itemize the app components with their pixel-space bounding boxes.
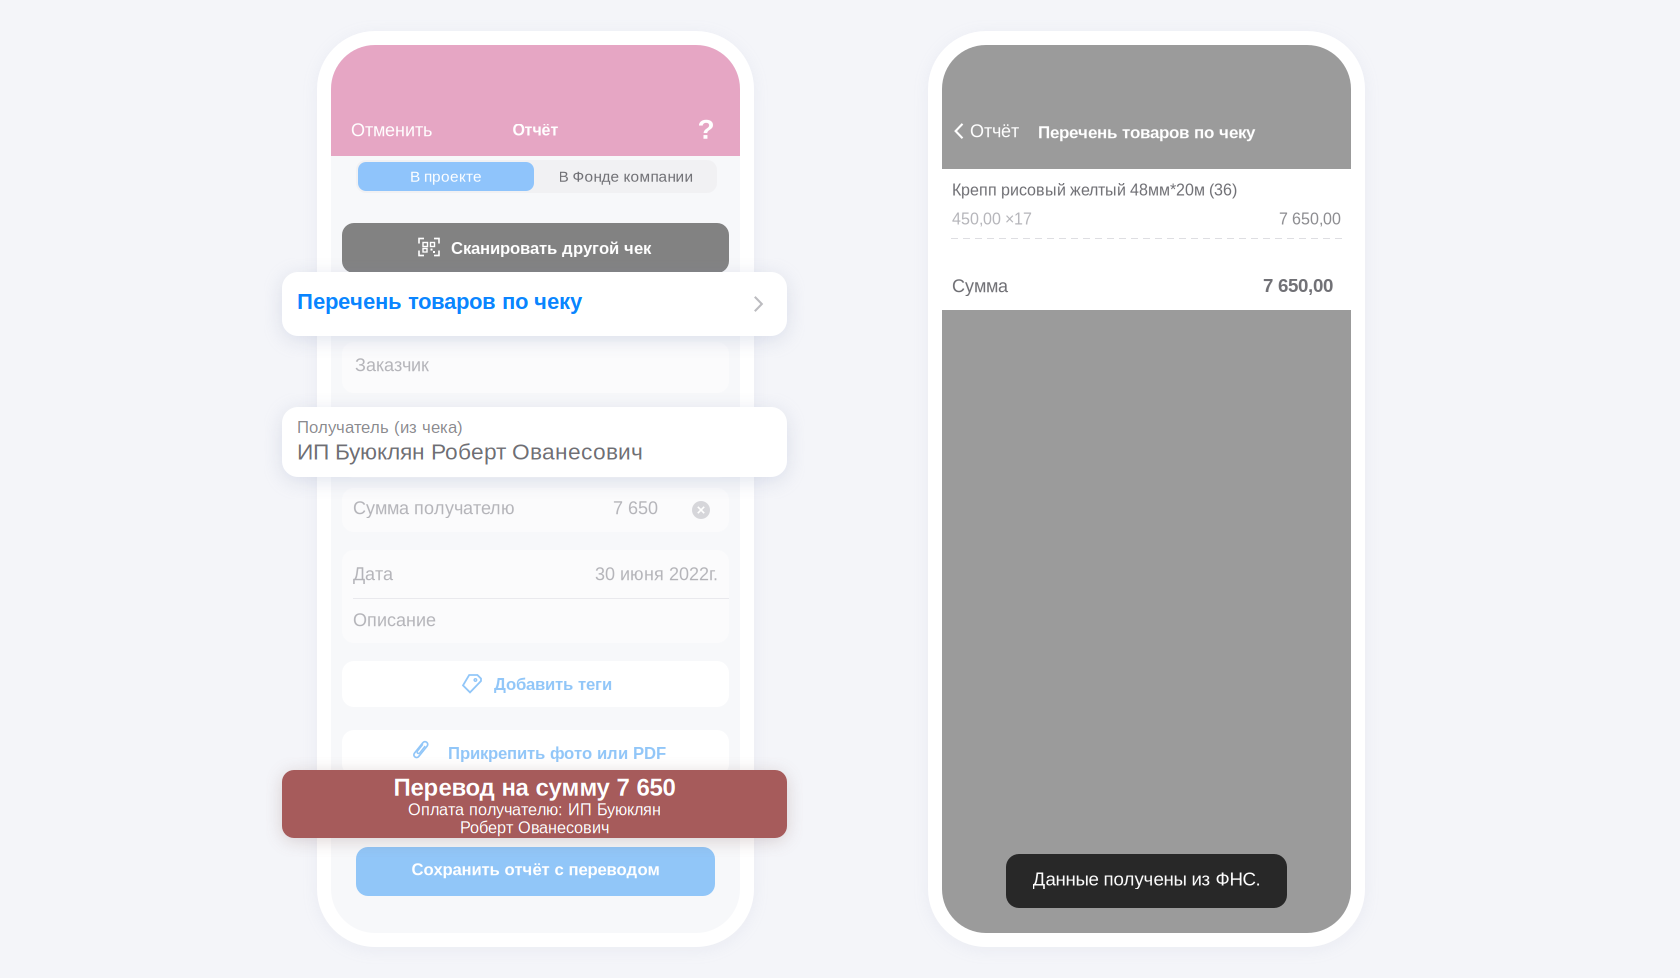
button[interactable]: В Фонде компании — [537, 162, 715, 191]
button[interactable]: Справка — [694, 117, 718, 141]
staticText: Прикрепить фото или PDF — [448, 744, 666, 763]
staticText: Сканировать другой чек — [451, 239, 651, 258]
staticText: 7 650 — [613, 498, 658, 518]
staticText: Сохранить отчёт с переводом — [411, 860, 659, 879]
staticText: Оплата получателю: ИП Буюклян — [408, 800, 661, 819]
staticText: В проекте — [410, 168, 482, 185]
staticText: В Фонде компании — [558, 168, 693, 185]
staticText: ИП Буюклян Роберт Ованесович — [297, 439, 643, 464]
staticText: Получатель (из чека) — [297, 418, 463, 437]
staticText: Описание — [353, 610, 436, 630]
button[interactable]: Перечень товаров по чеку — [282, 272, 787, 336]
button[interactable]: Прикрепить фото или PDF — [342, 730, 729, 776]
staticText: Перевод на сумму 7 650 — [393, 774, 675, 801]
staticText: Отменить — [351, 120, 432, 140]
staticText: Заказчик — [355, 355, 429, 375]
staticText: 450,00 ×17 — [952, 210, 1032, 228]
staticText: Сумма получателю — [353, 498, 515, 518]
staticText: Дата — [353, 564, 393, 584]
staticText: Сумма — [952, 276, 1008, 296]
button[interactable]: Отменить — [351, 120, 432, 140]
staticText: 30 июня 2022г. — [595, 564, 718, 584]
button[interactable]: Сканировать другой чек — [342, 223, 729, 273]
staticText: Добавить теги — [494, 675, 612, 694]
staticText: ? — [697, 113, 714, 145]
staticText: Отчёт — [512, 121, 558, 139]
button[interactable]: Отчёт — [954, 121, 1019, 141]
staticText: Отчёт — [970, 121, 1019, 141]
button[interactable]: В проекте — [358, 162, 534, 191]
staticText: Данные получены из ФНС. — [1032, 869, 1260, 889]
staticText: Перечень товаров по чеку — [1038, 123, 1255, 142]
button[interactable]: Добавить теги — [342, 661, 729, 707]
button[interactable]: Сохранить отчёт с переводом — [356, 847, 715, 896]
staticText: 7 650,00 — [1263, 275, 1333, 296]
staticText: 7 650,00 — [1279, 210, 1341, 228]
staticText: Роберт Ованесович — [460, 818, 609, 837]
staticText: Перечень товаров по чеку — [297, 289, 582, 314]
staticText: Крепп рисовый желтый 48мм*20м (36) — [952, 181, 1237, 199]
